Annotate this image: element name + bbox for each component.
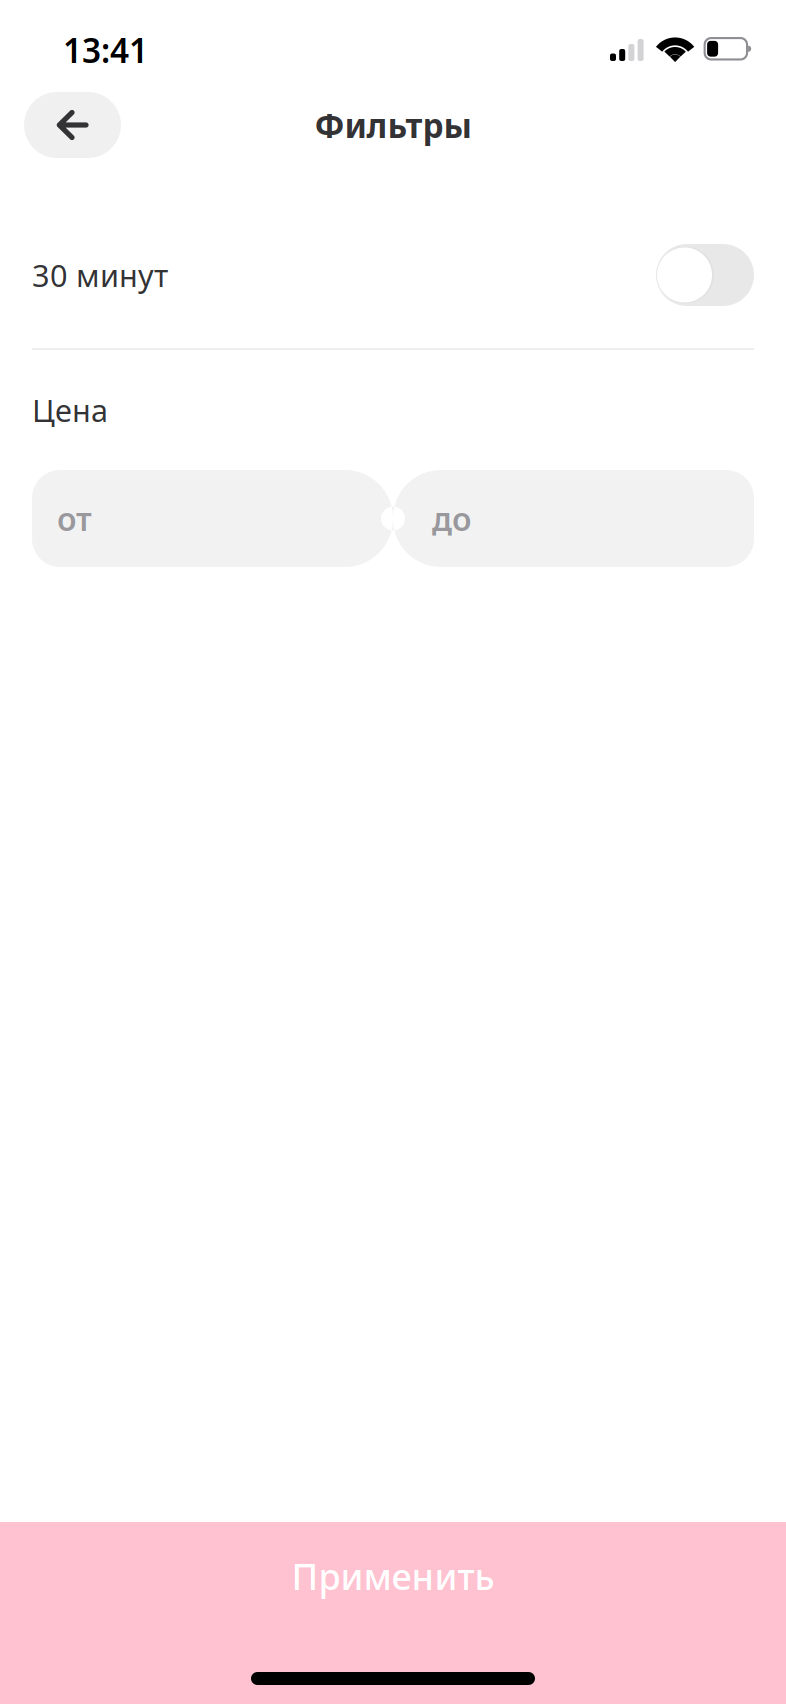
button[interactable]: от bbox=[32, 470, 393, 567]
button[interactable]: Назад bbox=[24, 92, 121, 158]
button[interactable]: до bbox=[393, 470, 754, 567]
staticText: Цена bbox=[32, 390, 108, 430]
button[interactable]: Применить bbox=[0, 1522, 786, 1704]
staticText: Применить bbox=[291, 1552, 494, 1600]
staticText: 13:41 bbox=[63, 28, 148, 72]
button[interactable]: 30 минут bbox=[656, 244, 754, 306]
staticText: до bbox=[432, 497, 472, 540]
staticText: от bbox=[57, 497, 92, 540]
staticText: Фильтры bbox=[314, 103, 471, 147]
staticText: 30 минут bbox=[32, 255, 168, 295]
